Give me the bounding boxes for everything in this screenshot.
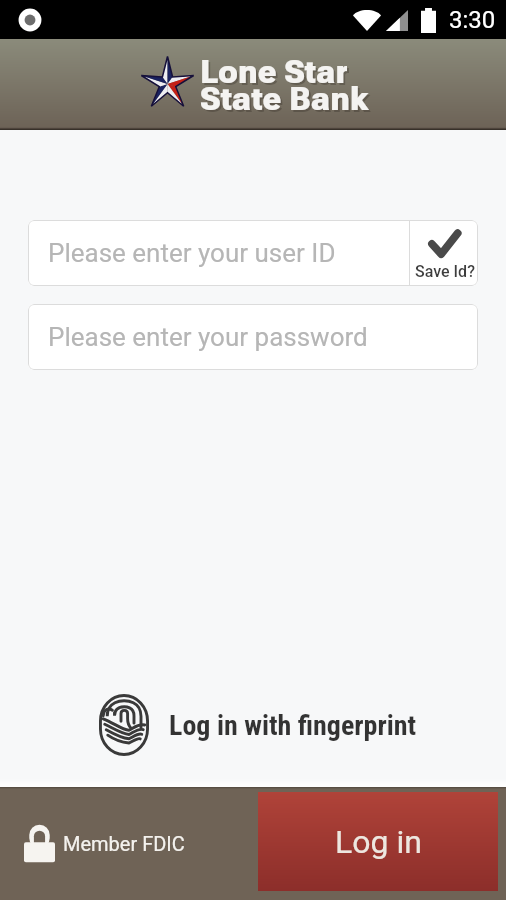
staticText: Log in <box>335 823 422 861</box>
button[interactable]: Please enter your user ID <box>28 220 478 286</box>
staticText: Lone Star <box>200 53 348 91</box>
staticText: Please enter your password <box>48 322 368 352</box>
button[interactable]: Log in with fingerprint <box>99 694 417 756</box>
staticText: Please enter your user ID <box>48 238 336 268</box>
staticText: Lone Star <box>202 55 350 93</box>
staticText: 3:30 <box>449 6 496 34</box>
staticText: Log in with fingerprint <box>169 709 417 742</box>
other: Status icon <box>17 7 43 33</box>
button[interactable]: Member FDIC <box>24 824 185 863</box>
staticText: State Bank <box>200 80 369 118</box>
staticText: Save Id? <box>415 262 475 281</box>
staticText: Member FDIC <box>63 832 185 855</box>
button[interactable]: Log in <box>258 792 498 891</box>
staticText: State Bank <box>202 82 371 120</box>
button[interactable]: Please enter your password <box>28 304 478 370</box>
button[interactable]: Save Id <box>410 220 478 286</box>
